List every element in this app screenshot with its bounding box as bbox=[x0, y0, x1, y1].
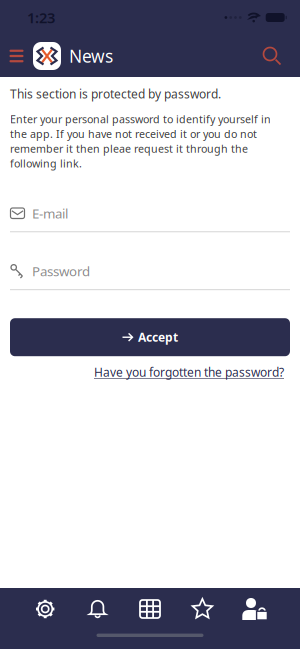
button[interactable]: Favourites bbox=[176, 597, 229, 621]
staticText: 1:23 bbox=[27, 8, 55, 27]
staticText: E-mail bbox=[32, 204, 68, 222]
button[interactable]: Search bbox=[244, 35, 300, 77]
staticText: This section is protected by password. bbox=[10, 86, 221, 102]
button[interactable]: Notifications bbox=[71, 597, 124, 621]
button[interactable]: Have you forgotten the password? bbox=[94, 364, 284, 380]
button[interactable]: E-mail bbox=[10, 204, 290, 232]
staticText: Have you forgotten the password? bbox=[94, 364, 284, 380]
staticText: Accept bbox=[138, 329, 178, 345]
button[interactable]: Menu bbox=[0, 35, 33, 77]
button[interactable]: Accept bbox=[10, 318, 290, 356]
button[interactable]: Password bbox=[10, 262, 290, 290]
staticText: News bbox=[69, 44, 113, 67]
button[interactable]: Settings bbox=[19, 597, 71, 621]
button[interactable]: Private area bbox=[229, 597, 281, 621]
staticText: Password bbox=[32, 262, 90, 280]
button[interactable]: Results bbox=[124, 597, 176, 621]
staticText: Enter your personal password to identify… bbox=[10, 112, 271, 170]
